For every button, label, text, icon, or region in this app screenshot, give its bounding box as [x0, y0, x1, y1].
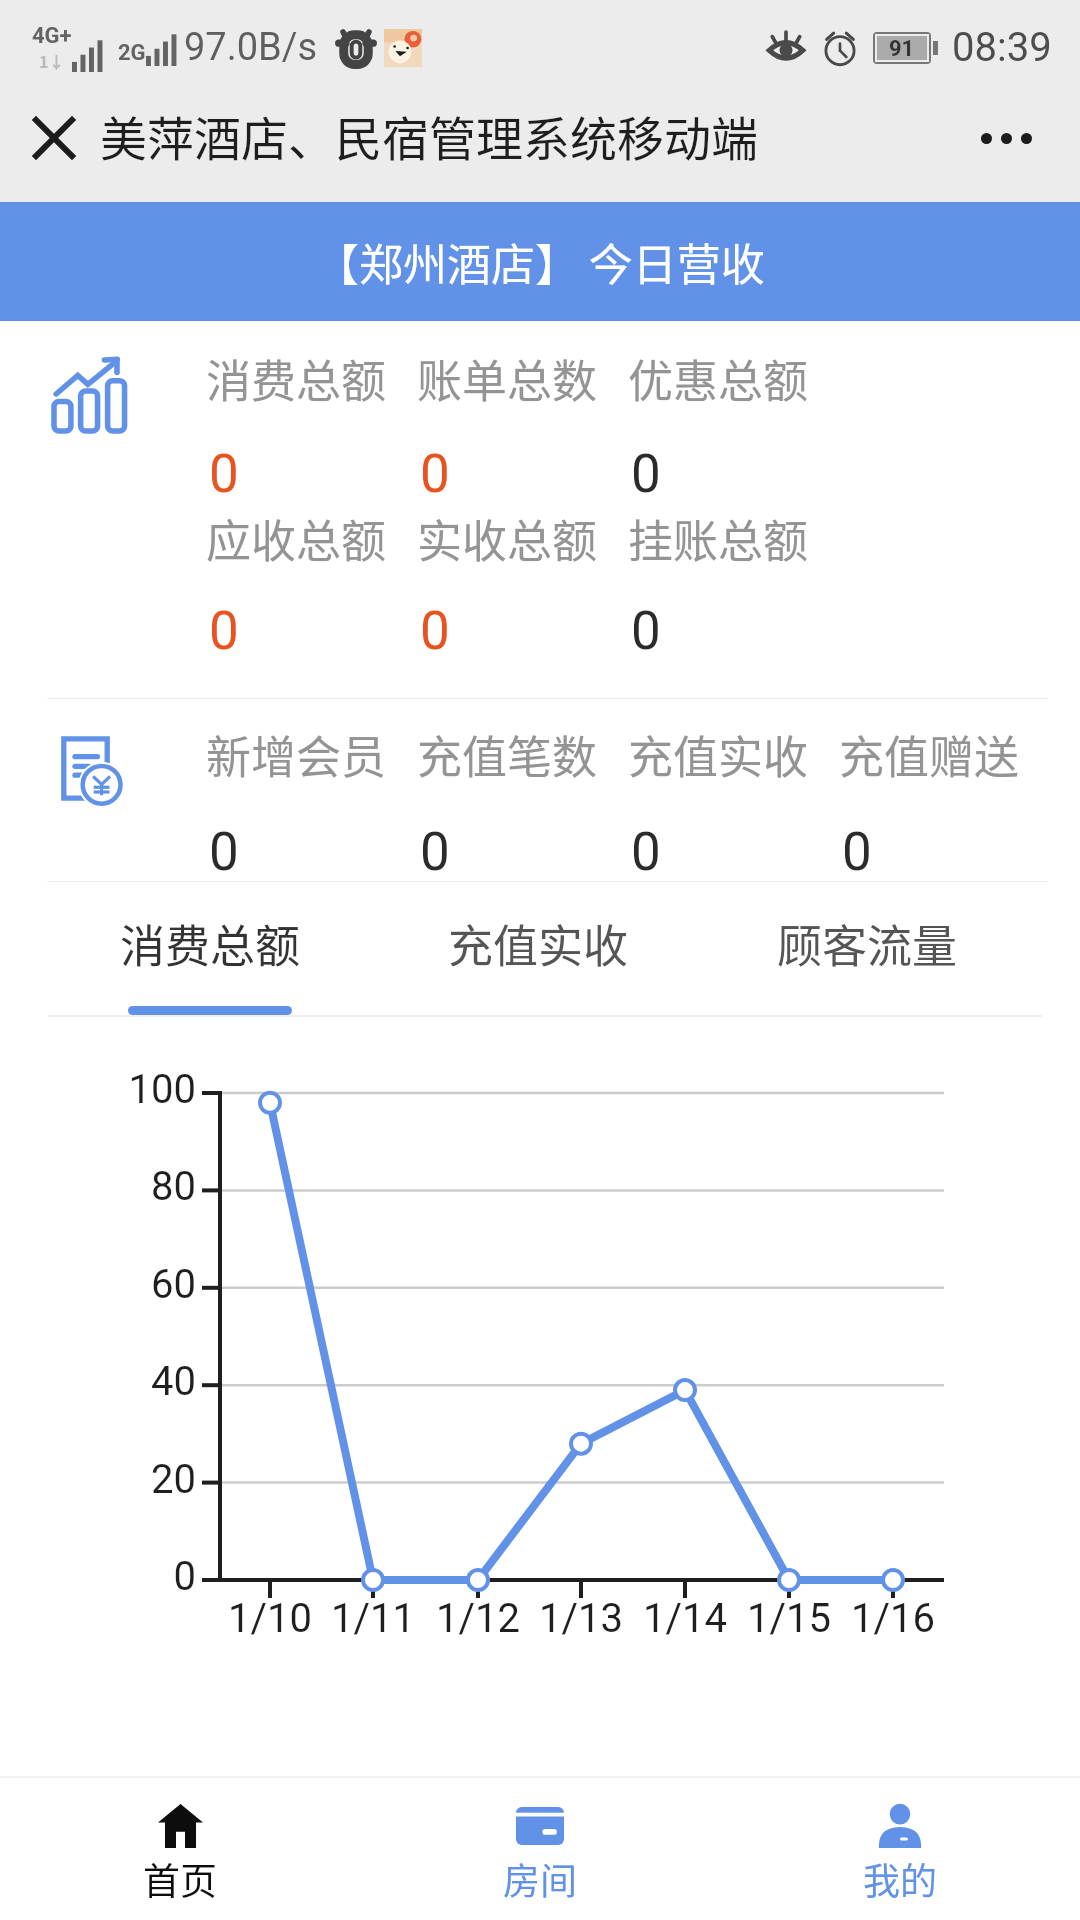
staticText: 0 — [631, 600, 661, 662]
staticText: 4G+ — [32, 23, 72, 49]
staticText: 1/13 — [539, 1595, 623, 1642]
staticText: 0 — [420, 821, 450, 883]
staticText: 实收总额 — [417, 506, 598, 571]
staticText: 美萍酒店、民宿管理系统移动端 — [100, 101, 758, 169]
staticText: 顾客流量 — [777, 911, 958, 976]
staticText: 首页 — [143, 1852, 217, 1906]
staticText: 挂账总额 — [628, 506, 809, 571]
staticText: 97.0B/s — [184, 25, 318, 70]
staticText: 房间 — [503, 1852, 577, 1906]
staticText: 20 — [151, 1456, 196, 1503]
staticText: 40 — [151, 1358, 196, 1405]
staticText: 【郑州酒店】 今日营收 — [315, 230, 765, 294]
button[interactable]: 充值实收 — [374, 882, 703, 1017]
staticText: 08:39 — [952, 24, 1052, 71]
staticText: 80 — [151, 1163, 196, 1210]
staticText: 1/11 — [331, 1595, 415, 1642]
staticText: 0 — [420, 443, 450, 505]
staticText: 消费总额 — [120, 911, 301, 976]
staticText: 充值笔数 — [417, 722, 598, 787]
staticText: 新增会员 — [206, 722, 387, 787]
staticText: 0 — [209, 821, 239, 883]
button[interactable]: More options — [968, 100, 1044, 176]
staticText: 充值赠送 — [839, 722, 1020, 787]
staticText: 91 — [889, 36, 915, 60]
staticText: 1/16 — [851, 1595, 935, 1642]
button[interactable]: 顾客流量 — [703, 882, 1032, 1017]
button[interactable]: 【郑州酒店】 今日营收 — [0, 202, 1080, 321]
button[interactable]: 房间 — [360, 1778, 720, 1920]
staticText: 我的 — [863, 1852, 937, 1906]
staticText: 充值实收 — [628, 722, 809, 787]
staticText: 60 — [151, 1261, 196, 1308]
staticText: 1/15 — [747, 1595, 831, 1642]
staticText: 账单总数 — [417, 346, 598, 411]
staticText: 0 — [842, 821, 872, 883]
button[interactable]: 消费总额 — [46, 882, 374, 1017]
staticText: 0 — [631, 443, 661, 505]
staticText: 应收总额 — [206, 506, 387, 571]
button[interactable]: Close — [18, 102, 90, 174]
staticText: 消费总额 — [206, 346, 387, 411]
staticText: 0 — [420, 600, 450, 662]
button[interactable]: 我的 — [720, 1778, 1080, 1920]
staticText: 0 — [209, 443, 239, 505]
staticText: 0 — [173, 1553, 196, 1600]
staticText: 0 — [209, 600, 239, 662]
staticText: 1/10 — [228, 1595, 312, 1642]
staticText: 1/14 — [643, 1595, 727, 1642]
button[interactable]: 首页 — [0, 1778, 360, 1920]
button[interactable]: 新增会员 — [0, 699, 1080, 881]
staticText: 优惠总额 — [628, 346, 809, 411]
staticText: 100 — [128, 1066, 196, 1113]
staticText: 2G — [118, 40, 146, 66]
staticText: 0 — [631, 821, 661, 883]
staticText: 充值实收 — [448, 911, 629, 976]
button[interactable]: 消费总额 — [0, 321, 1080, 698]
staticText: 1↓ — [39, 49, 65, 72]
staticText: 1/12 — [436, 1595, 520, 1642]
